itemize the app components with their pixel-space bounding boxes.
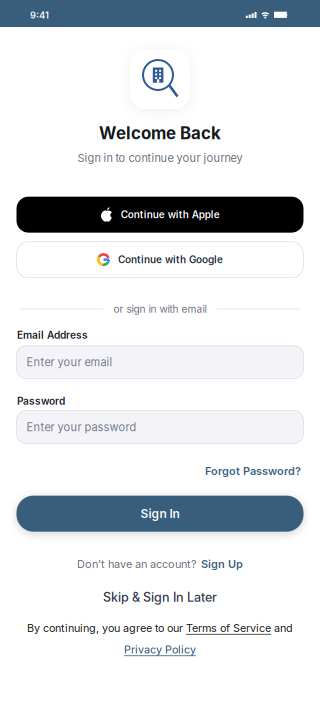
button[interactable]: Forgot Password? — [205, 464, 301, 478]
button[interactable]: Continue with Apple — [16, 197, 303, 233]
staticText: By continuing, you agree to our Terms of… — [27, 622, 293, 634]
staticText: Privacy Policy — [124, 643, 196, 656]
staticText: Skip & Sign In Later — [103, 590, 217, 605]
staticText: Sign In — [140, 507, 179, 521]
button[interactable]: Sign Up — [201, 557, 243, 571]
staticText: Sign in to continue your journey — [77, 151, 242, 165]
staticText: Sign Up — [201, 557, 243, 571]
staticText: or sign in with email — [113, 303, 206, 315]
button[interactable]: Continue with Google — [16, 242, 303, 278]
staticText: Don't have an account? — [77, 557, 197, 571]
staticText: Enter your email — [26, 355, 112, 369]
button[interactable]: Sign In — [16, 496, 303, 532]
staticText: Continue with Google — [118, 254, 223, 266]
staticText: Email Address — [17, 329, 88, 341]
staticText: Password — [17, 395, 65, 407]
staticText: Continue with Apple — [121, 209, 220, 221]
button[interactable]: Privacy Policy — [124, 642, 196, 658]
button[interactable]: Skip & Sign In Later — [103, 589, 217, 606]
staticText: 9:41 — [30, 9, 49, 20]
staticText: Enter your password — [26, 420, 136, 434]
staticText: Forgot Password? — [205, 464, 301, 478]
staticText: Welcome Back — [99, 123, 221, 143]
